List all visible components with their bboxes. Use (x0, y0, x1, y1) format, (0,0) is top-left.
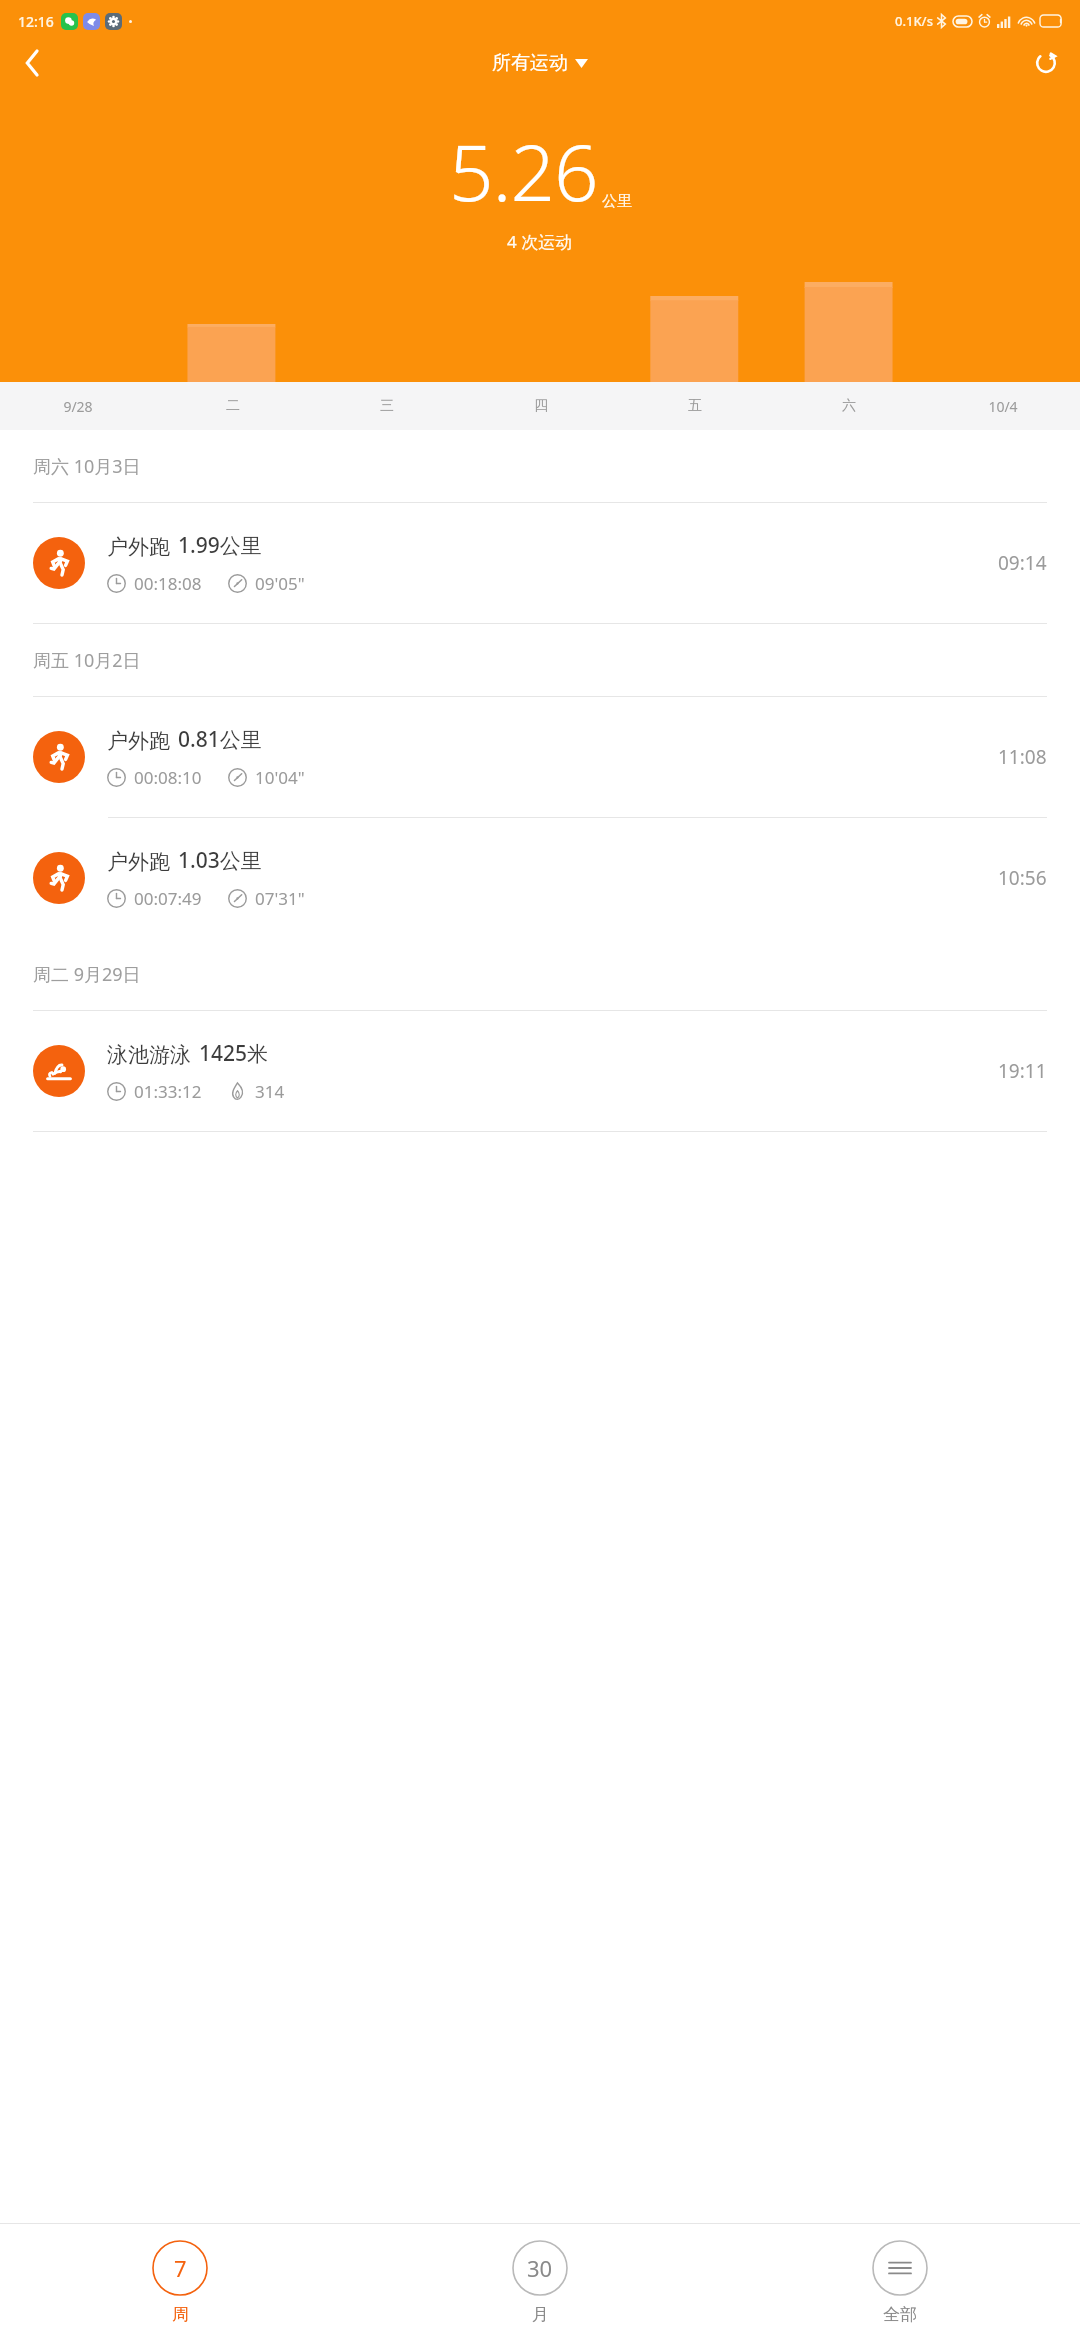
staticText: 12:16 (18, 12, 54, 31)
staticText: 六 (842, 397, 856, 415)
staticText: 0.1K/s (895, 12, 933, 30)
staticText: 00:07:49 (134, 887, 202, 910)
staticText: 0.81公里 (178, 725, 262, 754)
staticText: 泳池游泳 (107, 1042, 191, 1068)
staticText: 10:56 (998, 865, 1047, 891)
staticText: 11:08 (998, 744, 1047, 770)
staticText: 1425米 (199, 1039, 269, 1068)
button[interactable]: 泳池游泳 (0, 1011, 1080, 1131)
staticText: 周五 10月2日 (33, 648, 141, 673)
button[interactable]: 户外跑 (0, 697, 1080, 817)
staticText: 09'05" (255, 572, 305, 595)
staticText: 01:33:12 (134, 1080, 202, 1103)
staticText: 全部 (883, 2304, 917, 2325)
staticText: 19:11 (998, 1058, 1047, 1084)
staticText: 314 (255, 1080, 285, 1103)
button[interactable]: 返回 (8, 42, 56, 84)
staticText: 四 (534, 397, 548, 415)
staticText: 三 (380, 397, 394, 415)
staticText: 9/28 (63, 397, 93, 416)
button[interactable]: 月 (360, 2224, 720, 2340)
staticText: 户外跑 (107, 728, 170, 754)
staticText: 07'31" (255, 887, 305, 910)
staticText: 1.99公里 (178, 531, 262, 560)
button[interactable]: 全部 (720, 2224, 1080, 2340)
staticText: 09:14 (998, 550, 1047, 576)
button[interactable]: 所有运动 (492, 51, 588, 75)
staticText: 五 (688, 397, 702, 415)
staticText: 10'04" (255, 766, 305, 789)
staticText: 周 (172, 2304, 189, 2325)
button[interactable]: 户外跑 (0, 818, 1080, 938)
staticText: 00:18:08 (134, 572, 202, 595)
staticText: 7 (174, 2253, 187, 2283)
staticText: 所有运动 (492, 51, 568, 75)
staticText: 00:08:10 (134, 766, 202, 789)
staticText: 公里 (602, 192, 632, 211)
button[interactable]: 周 (0, 2224, 360, 2340)
staticText: 周六 10月3日 (33, 454, 141, 479)
staticText: 户外跑 (107, 534, 170, 560)
button[interactable]: 户外跑 (0, 503, 1080, 623)
staticText: 月 (532, 2304, 549, 2325)
staticText: 二 (226, 397, 240, 415)
staticText: 周二 9月29日 (33, 962, 141, 987)
staticText: 4 次运动 (507, 230, 573, 253)
staticText: 1.03公里 (178, 846, 262, 875)
button[interactable]: 同步 (1022, 42, 1070, 84)
staticText: 户外跑 (107, 849, 170, 875)
staticText: 5.26 (449, 118, 598, 224)
staticText: 30 (527, 2253, 553, 2283)
staticText: 10/4 (988, 397, 1018, 416)
